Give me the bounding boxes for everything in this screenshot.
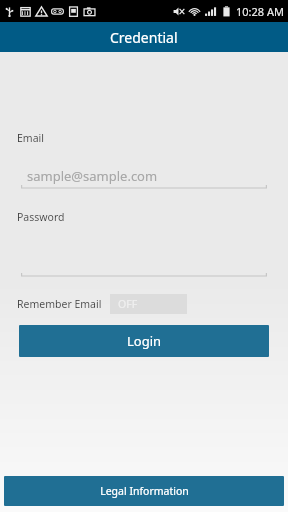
staticText: Password [17,210,65,224]
staticText: sample@sample.com [27,167,158,185]
staticText: OFF [118,297,138,311]
staticText: Email [17,131,44,145]
button[interactable] [21,250,267,278]
staticText: Remember Email [17,297,102,311]
button[interactable]: sample@sample.com [21,162,267,190]
button[interactable]: Remember Email toggle, off [110,294,187,314]
button[interactable]: Legal Information [4,476,284,506]
staticText: Login [127,332,162,350]
staticText: 10:28 AM [236,4,284,19]
button[interactable]: Login [19,325,269,357]
staticText: Legal Information [100,484,189,498]
staticText: Credential [110,28,178,47]
